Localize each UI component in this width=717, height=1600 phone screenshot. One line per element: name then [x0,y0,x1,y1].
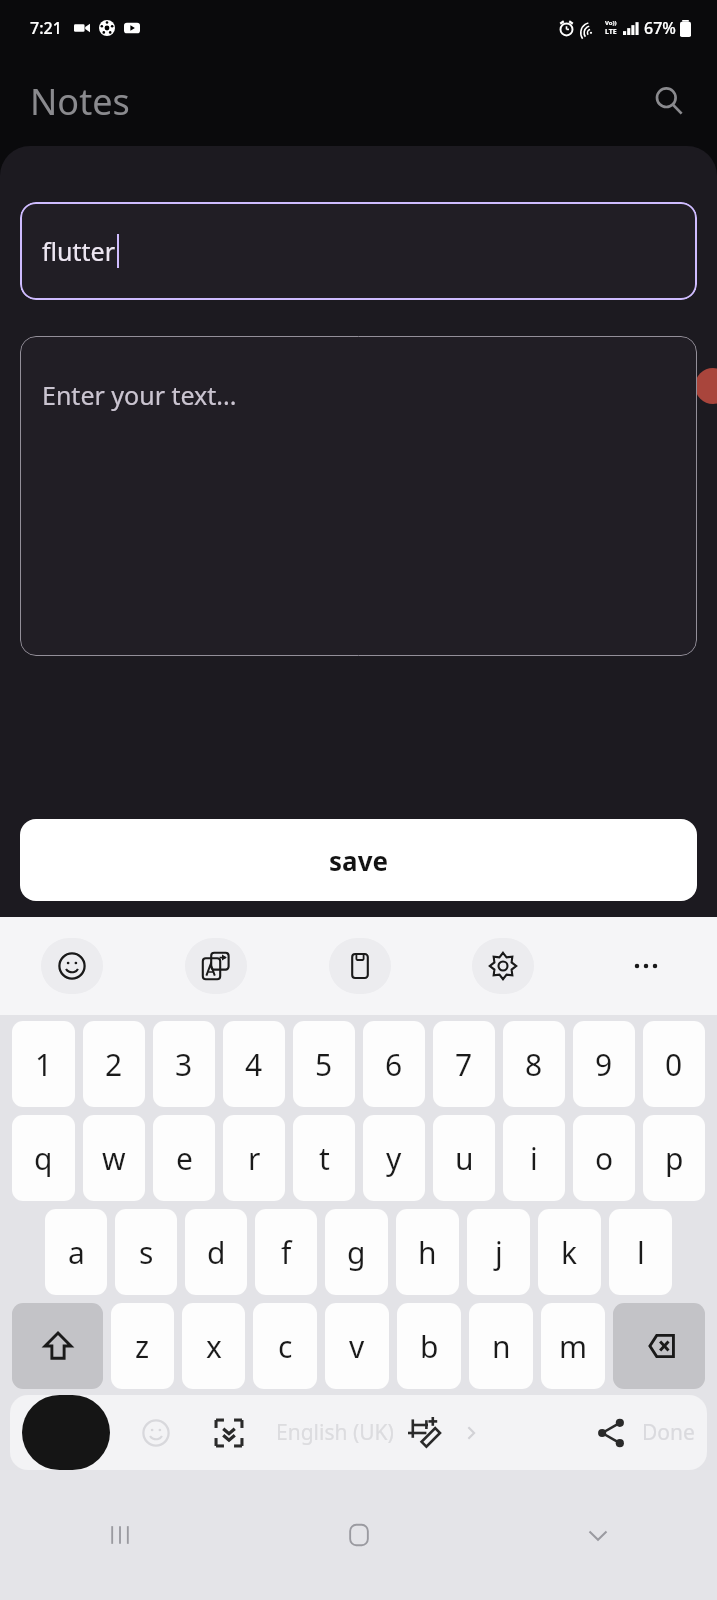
button[interactable]: Translate [144,917,288,1015]
button[interactable]: 9 [573,1021,635,1107]
button[interactable]: Edit [398,1407,450,1459]
button[interactable]: s [115,1209,177,1295]
staticText: w [102,1138,126,1179]
button[interactable]: d [185,1209,247,1295]
button[interactable]: More [574,917,717,1015]
button[interactable]: 5 [293,1021,355,1107]
button[interactable]: n [469,1303,533,1389]
button[interactable]: 2 [83,1021,145,1107]
staticText: LTE [605,27,617,37]
button[interactable]: l [609,1209,672,1295]
staticText: e [176,1138,193,1179]
staticText: m [559,1326,588,1367]
staticText: Done [642,1418,695,1447]
button[interactable]: k [538,1209,601,1295]
button[interactable]: c [253,1303,317,1389]
button[interactable]: r [223,1115,285,1201]
button[interactable]: save [20,819,697,901]
button[interactable]: u [433,1115,495,1201]
staticText: z [135,1326,150,1367]
staticText: v [349,1326,365,1367]
staticText: English (UK) [276,1418,394,1447]
button[interactable]: a [45,1209,107,1295]
button[interactable]: j [467,1209,530,1295]
button[interactable]: e [153,1115,215,1201]
staticText: Notes [30,77,130,126]
button[interactable]: Backspace [613,1303,705,1389]
staticText: i [530,1138,538,1179]
button[interactable]: w [83,1115,145,1201]
staticText: g [347,1232,366,1273]
staticText: p [665,1138,684,1179]
staticText: 67% [644,17,676,39]
button[interactable]: p [643,1115,705,1201]
button[interactable]: o [573,1115,635,1201]
staticText: y [386,1138,402,1179]
button[interactable]: g [325,1209,388,1295]
staticText: 8 [525,1044,543,1085]
staticText: h [418,1232,437,1273]
button[interactable]: Recents [0,1470,239,1600]
staticText: k [561,1232,578,1273]
staticText: Vo)) [605,19,617,27]
staticText: 2 [105,1044,123,1085]
button[interactable]: 6 [363,1021,425,1107]
staticText: Enter your text... [42,378,237,412]
staticText: 7:21 [30,17,62,39]
staticText: s [139,1232,154,1273]
staticText: q [34,1138,53,1179]
button[interactable]: b [397,1303,461,1389]
staticText: f [281,1232,292,1273]
staticText: n [492,1326,511,1367]
button[interactable]: 8 [503,1021,565,1107]
staticText: c [278,1326,293,1367]
button[interactable]: Enter your text... [20,336,697,656]
staticText: b [420,1326,439,1367]
staticText: x [206,1326,222,1367]
staticText: l [637,1232,645,1273]
button[interactable]: v [325,1303,389,1389]
staticText: 6 [385,1044,403,1085]
staticText: a [68,1232,85,1273]
staticText: 9 [595,1044,613,1085]
staticText: r [248,1138,261,1179]
button[interactable]: Expand [206,1410,252,1456]
button[interactable]: y [363,1115,425,1201]
staticText: 3 [175,1044,193,1085]
button[interactable]: Home [239,1470,478,1600]
button[interactable]: flutter [20,202,697,300]
button[interactable]: h [396,1209,459,1295]
button[interactable]: 3 [153,1021,215,1107]
button[interactable]: x [182,1303,245,1389]
button[interactable]: q [12,1115,75,1201]
button[interactable]: 4 [223,1021,285,1107]
staticText: 7 [455,1044,473,1085]
staticText: 4 [245,1044,263,1085]
staticText: d [207,1232,226,1273]
staticText: o [595,1138,614,1179]
staticText: 0 [665,1044,683,1085]
button[interactable]: z [111,1303,174,1389]
button[interactable]: t [293,1115,355,1201]
button[interactable]: Clipboard [288,917,431,1015]
button[interactable]: Shift [12,1303,103,1389]
button[interactable]: 7 [433,1021,495,1107]
button[interactable]: Share [586,1408,636,1458]
staticText: t [319,1138,330,1179]
staticText: save [329,843,388,878]
button[interactable]: 0 [643,1021,705,1107]
button[interactable]: Search [643,75,695,127]
staticText: flutter [42,234,115,268]
staticText: 5 [315,1044,333,1085]
button[interactable]: m [541,1303,605,1389]
staticText: j [495,1232,503,1273]
button[interactable]: i [503,1115,565,1201]
button[interactable]: Emoji [0,917,144,1015]
staticText: u [455,1138,474,1179]
button[interactable]: Settings [431,917,574,1015]
button[interactable]: f [255,1209,317,1295]
button[interactable]: 1 [12,1021,75,1107]
staticText: 1 [35,1044,53,1085]
